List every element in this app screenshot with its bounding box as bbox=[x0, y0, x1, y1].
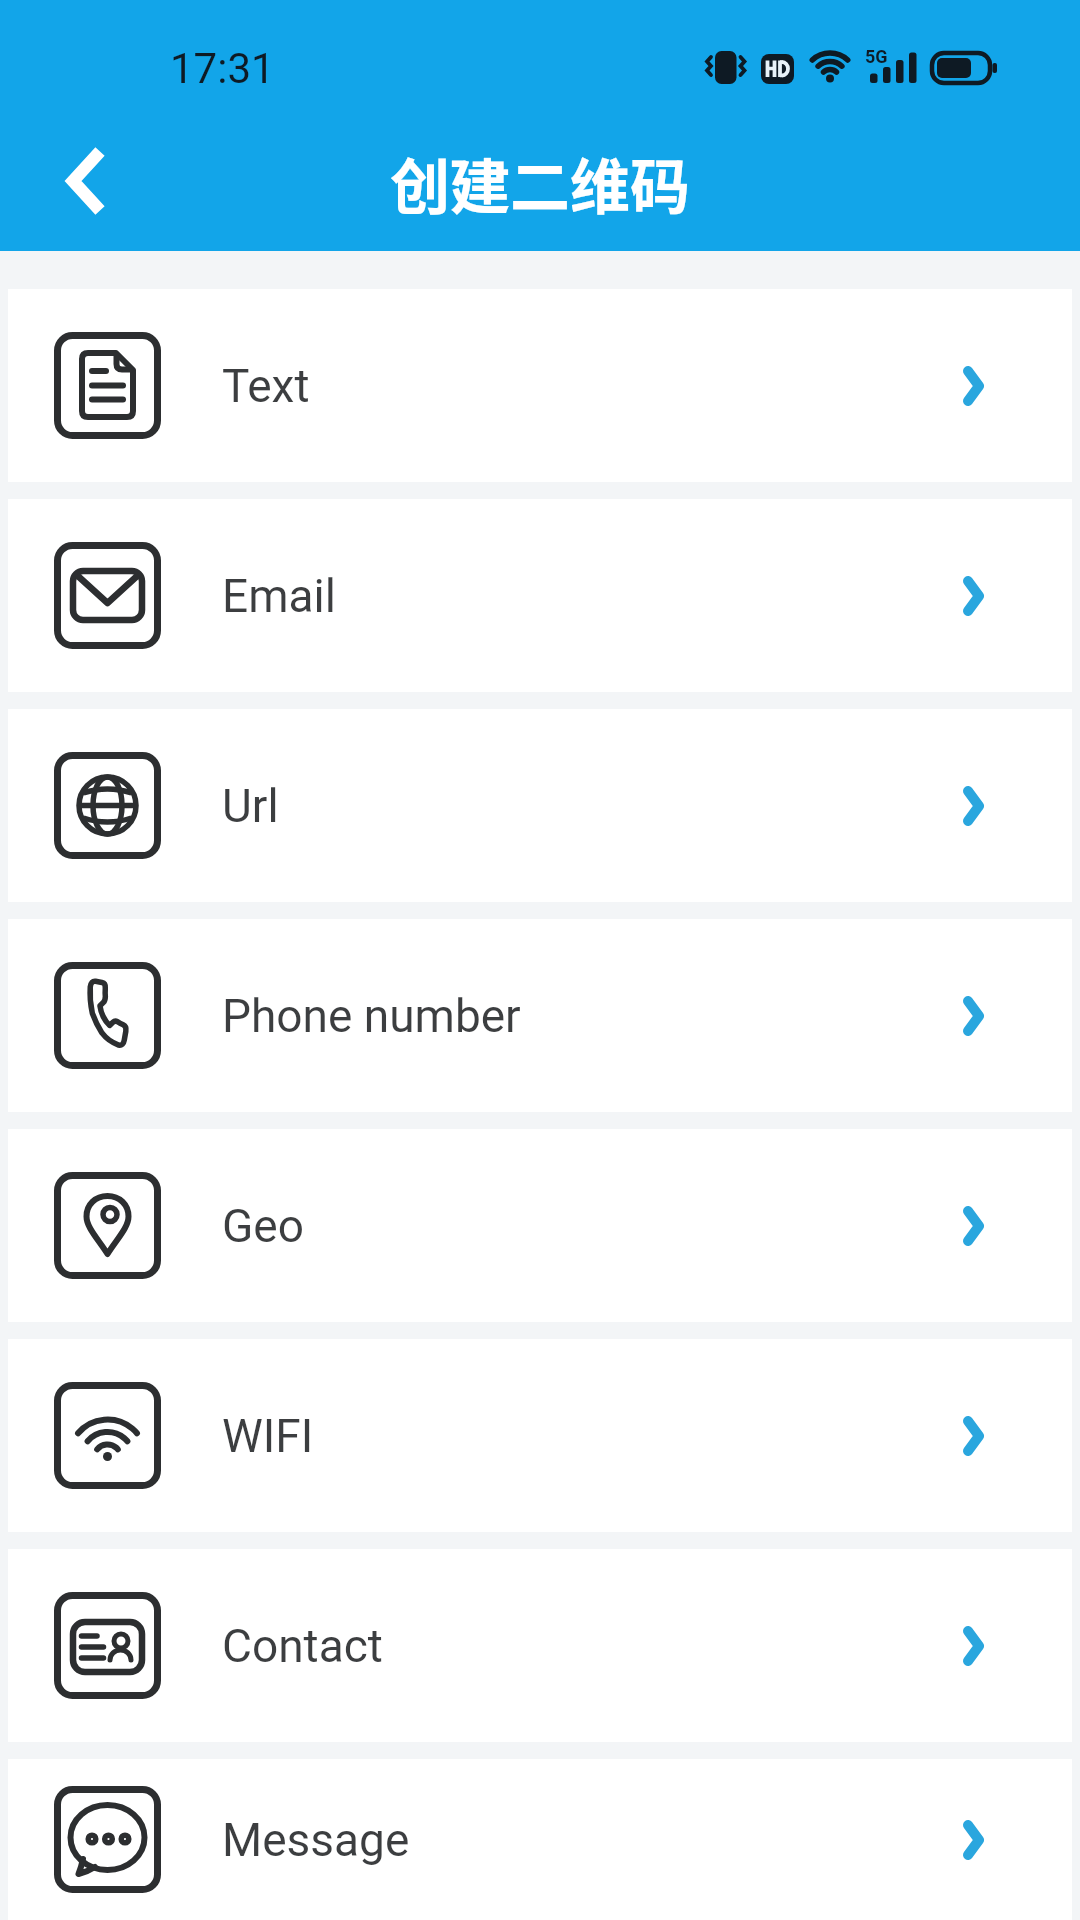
button[interactable] bbox=[33, 126, 133, 236]
staticText: 创建二维码 bbox=[390, 139, 690, 226]
button[interactable]: Message bbox=[8, 1759, 1072, 1920]
button[interactable]: Text bbox=[8, 289, 1072, 482]
button[interactable]: Email bbox=[8, 499, 1072, 692]
button[interactable]: Contact bbox=[8, 1549, 1072, 1742]
staticText: Url bbox=[222, 779, 279, 833]
staticText: 5G bbox=[865, 46, 888, 67]
button[interactable]: Geo bbox=[8, 1129, 1072, 1322]
button[interactable]: WIFI bbox=[8, 1339, 1072, 1532]
staticText: Phone number bbox=[222, 989, 521, 1043]
button[interactable]: Phone number bbox=[8, 919, 1072, 1112]
staticText: WIFI bbox=[222, 1409, 314, 1463]
button[interactable]: Url bbox=[8, 709, 1072, 902]
staticText: Geo bbox=[222, 1199, 304, 1253]
staticText: Message bbox=[222, 1813, 410, 1867]
staticText: Email bbox=[222, 569, 336, 623]
staticText: 17:31 bbox=[170, 44, 275, 93]
staticText: Text bbox=[222, 359, 310, 413]
staticText: Contact bbox=[222, 1619, 383, 1673]
